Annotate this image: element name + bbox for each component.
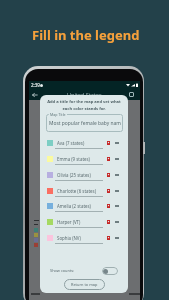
- button[interactable]: Show counts:: [50, 264, 118, 277]
- staticText: Amelia (2 states): [57, 203, 91, 209]
- button[interactable]: Emma (9 states): [40, 156, 128, 172]
- staticText: Show counts:: [50, 268, 75, 273]
- button[interactable]: Layers: [129, 92, 134, 97]
- button[interactable]: Return to map: [64, 279, 105, 290]
- staticText: Sophia (NV): [57, 235, 81, 241]
- button[interactable]: Delete: [107, 189, 110, 193]
- button[interactable]: Delete: [107, 204, 110, 208]
- staticText: Most popular female baby nam: [49, 120, 121, 127]
- button[interactable]: Delete: [107, 236, 110, 240]
- staticText: Olivia (25 states): [57, 172, 91, 178]
- button[interactable]: Delete: [107, 157, 110, 161]
- button[interactable]: Charlotte (6 states): [40, 188, 128, 204]
- button[interactable]: Delete: [107, 173, 110, 177]
- button[interactable]: Back: [32, 92, 38, 98]
- button[interactable]: Most popular female baby nam: [46, 114, 123, 132]
- button[interactable]: Amelia (2 states): [40, 203, 128, 219]
- button[interactable]: Delete: [107, 220, 110, 224]
- staticText: Fill in the legend: [32, 26, 140, 44]
- staticText: Ava (7 states): [57, 140, 85, 146]
- staticText: Map Title: [50, 112, 66, 117]
- button[interactable]: Ava (7 states): [40, 140, 128, 156]
- button[interactable]: Harper (VT): [40, 219, 128, 235]
- staticText: Add a title for the map and set what eac…: [46, 99, 122, 111]
- button[interactable]: Sophia (NV): [40, 235, 128, 251]
- staticText: United States: [67, 91, 102, 98]
- button[interactable]: Delete: [107, 141, 110, 145]
- staticText: Charlotte (6 states): [57, 188, 96, 194]
- staticText: Return to map: [71, 282, 98, 287]
- staticText: Emma (9 states): [57, 156, 90, 162]
- staticText: 2:39: [31, 82, 40, 88]
- staticText: Harper (VT): [57, 219, 81, 225]
- button[interactable]: Olivia (25 states): [40, 172, 128, 188]
